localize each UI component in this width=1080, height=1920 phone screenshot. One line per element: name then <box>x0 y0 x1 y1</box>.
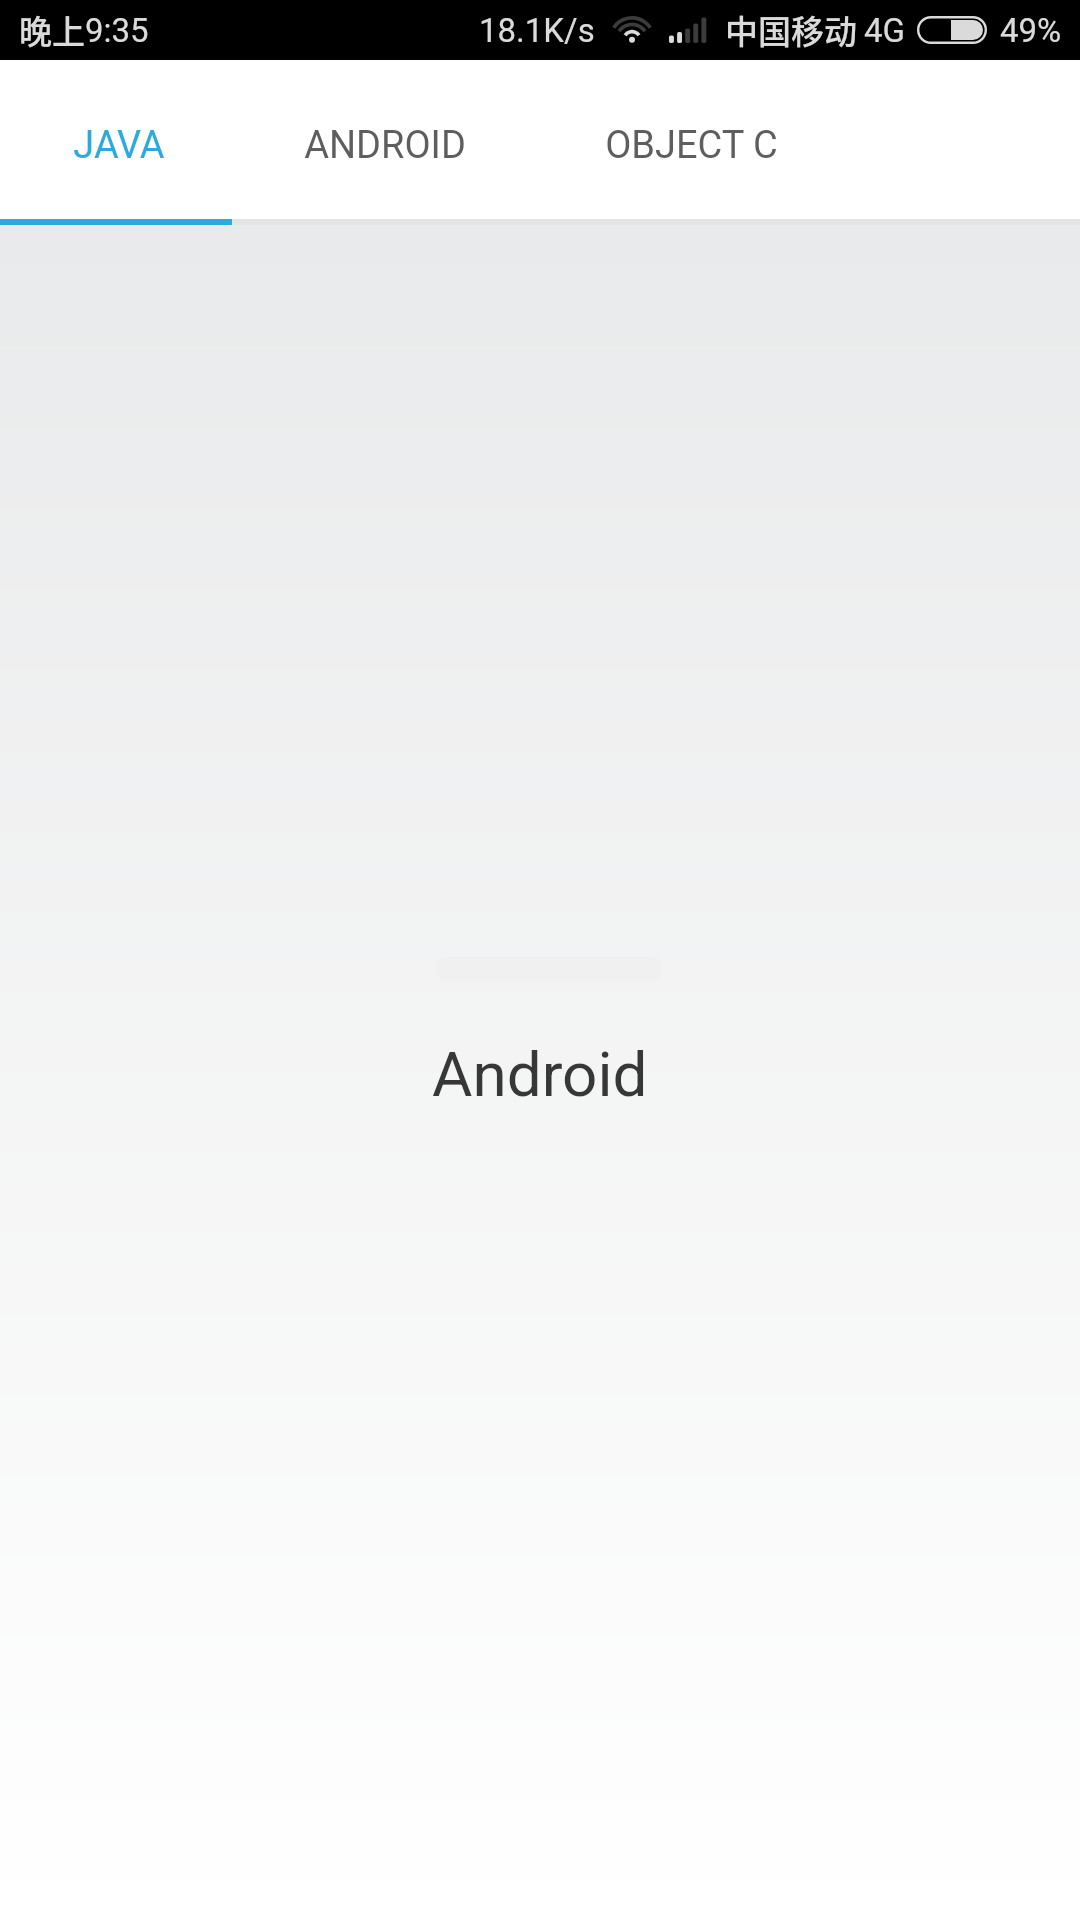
button[interactable]: ANDROID <box>235 72 534 219</box>
staticText: JAVA <box>73 123 165 168</box>
staticText: 49% <box>1000 11 1062 50</box>
button[interactable]: JAVA <box>3 72 235 219</box>
staticText: 中国移动 <box>725 6 857 54</box>
staticText: 18.1K/s <box>479 11 595 50</box>
staticText: 4G <box>864 11 906 50</box>
staticText: OBJECT C <box>605 123 778 168</box>
staticText: Android <box>432 1038 648 1111</box>
other: Mobile signal strength <box>669 16 706 44</box>
button[interactable]: OBJECT C <box>534 72 849 219</box>
other: Battery 49 percent <box>917 16 987 44</box>
other: Wi-Fi signal <box>613 16 651 44</box>
staticText: ANDROID <box>304 123 466 168</box>
staticText: 9:35 <box>85 11 149 50</box>
staticText: 晚上 <box>19 6 85 54</box>
